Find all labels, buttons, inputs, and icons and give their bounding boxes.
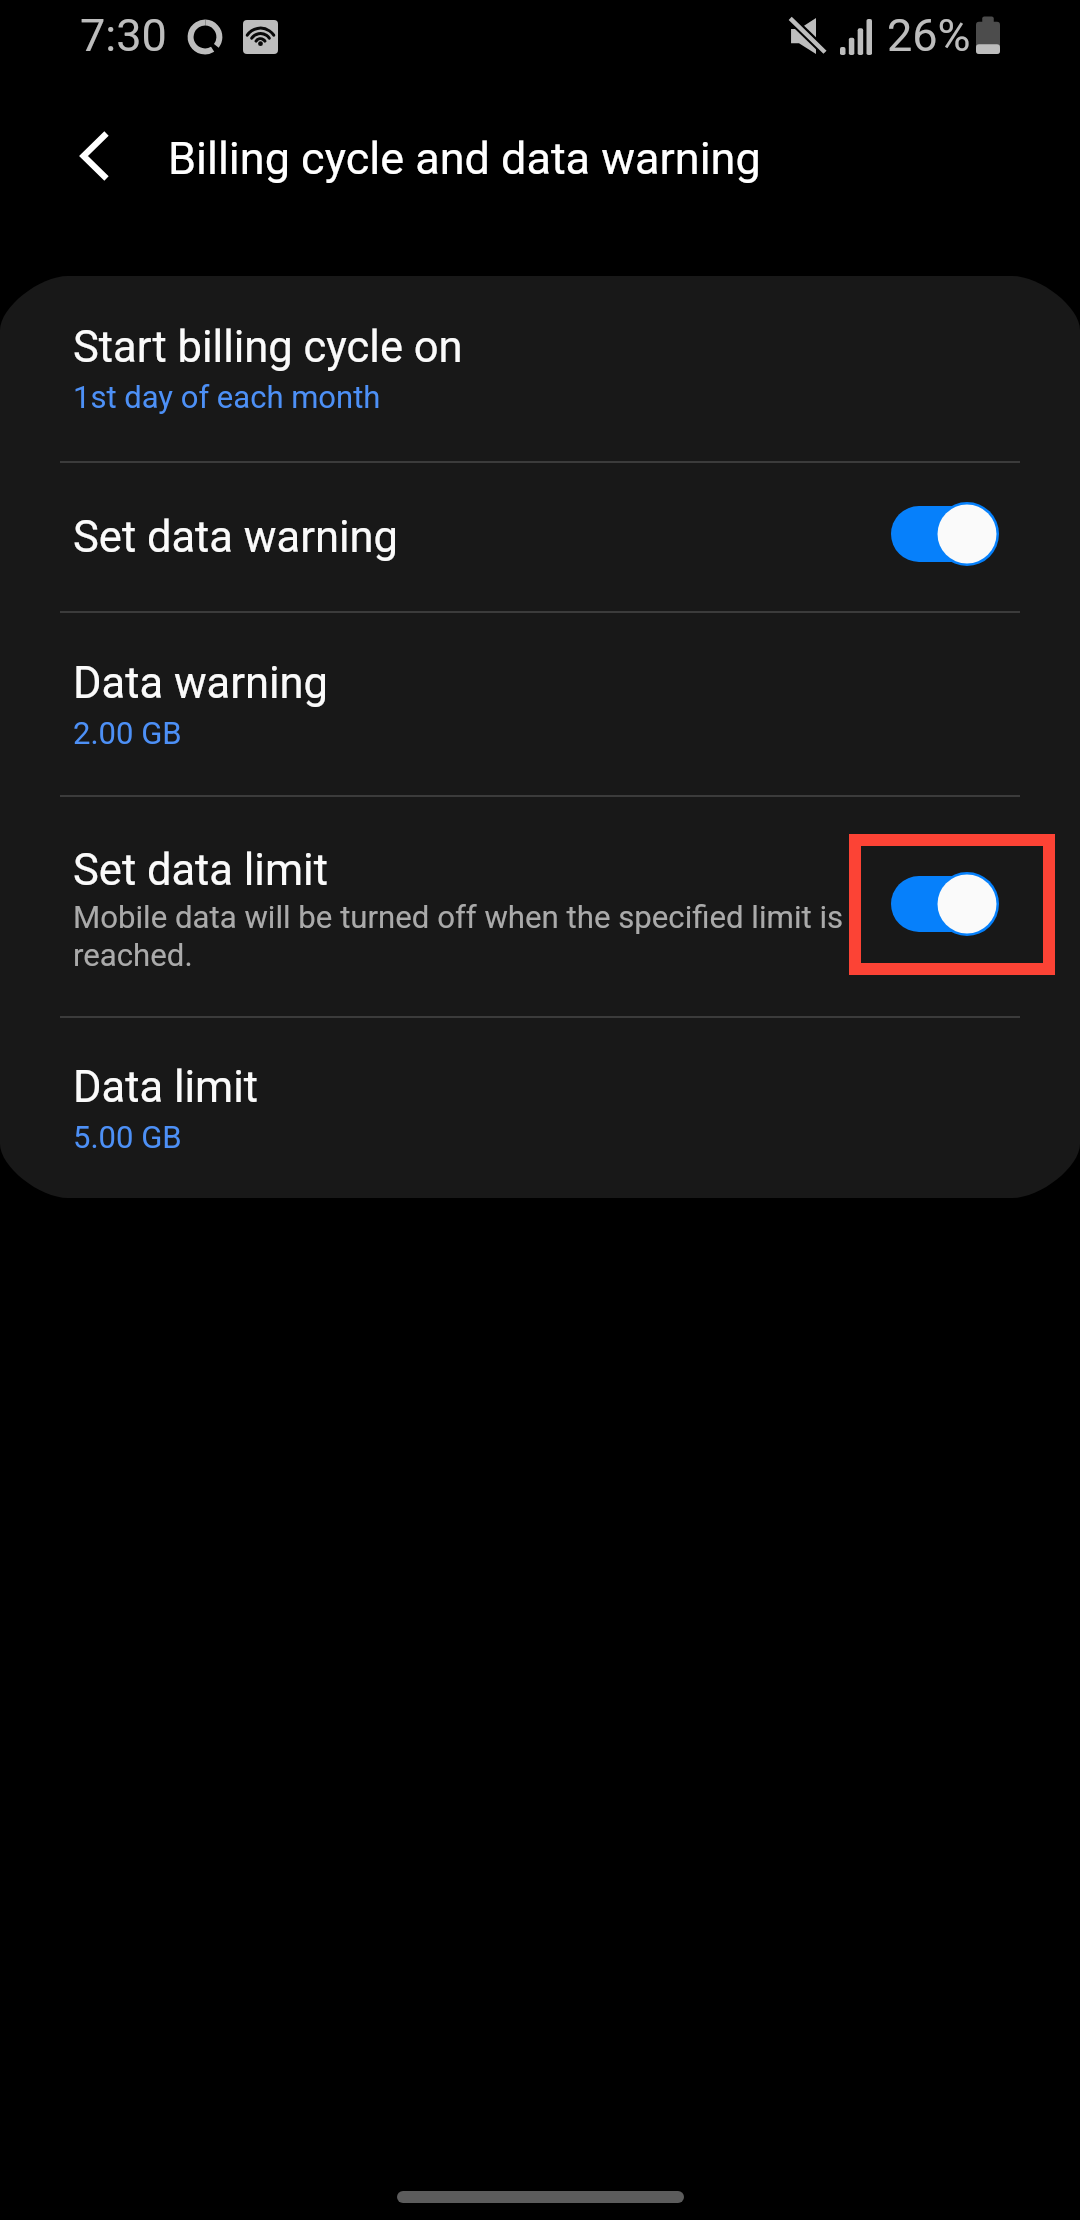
- staticText: 5.00 GB: [73, 1119, 182, 1155]
- button[interactable]: Navigate up: [40, 102, 148, 210]
- staticText: Set data limit: [73, 845, 328, 896]
- staticText: 26%: [887, 9, 971, 62]
- button[interactable]: Set data warning toggle, on: [849, 463, 1080, 611]
- staticText: Set data warning: [73, 512, 398, 563]
- staticText: Billing cycle and data warning: [168, 132, 761, 185]
- staticText: Data warning: [73, 658, 329, 709]
- button[interactable]: Set data warning: [0, 463, 1080, 611]
- button[interactable]: Data warning: [0, 613, 1080, 795]
- staticText: 2.00 GB: [73, 715, 182, 751]
- button[interactable]: Set data limit toggle, on: [849, 797, 1080, 1016]
- staticText: Mobile data will be turned off when the …: [73, 899, 847, 974]
- button[interactable]: Set data limit: [0, 797, 1080, 1016]
- staticText: 7:30: [80, 9, 167, 62]
- staticText: Start billing cycle on: [73, 322, 463, 373]
- staticText: Data limit: [73, 1062, 259, 1113]
- button[interactable]: Start billing cycle on: [0, 276, 1080, 461]
- button[interactable]: Data limit: [0, 1018, 1080, 1198]
- staticText: 1st day of each month: [73, 379, 381, 415]
